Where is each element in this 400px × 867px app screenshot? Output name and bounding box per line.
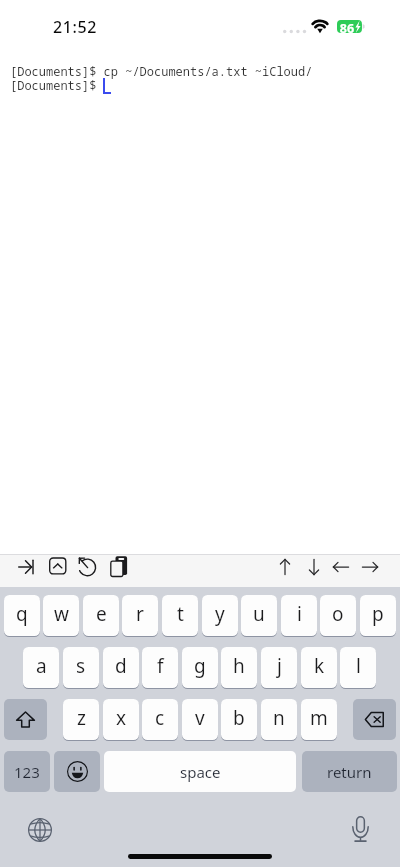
button[interactable]: g: [182, 647, 218, 688]
button[interactable]: Up: [273, 555, 297, 579]
staticText: 123: [14, 762, 40, 782]
staticText: i: [297, 601, 302, 627]
staticText: [Documents]$: [10, 77, 97, 93]
staticText: r: [136, 601, 144, 627]
button[interactable]: Right: [358, 555, 382, 579]
button[interactable]: b: [221, 699, 257, 740]
button[interactable]: r: [122, 595, 158, 636]
button[interactable]: return: [302, 751, 397, 792]
staticText: x: [116, 705, 127, 731]
button[interactable]: Backspace: [353, 699, 396, 740]
button[interactable]: e: [83, 595, 119, 636]
staticText: l: [356, 653, 361, 679]
button[interactable]: space: [104, 751, 296, 792]
staticText: f: [157, 653, 164, 679]
staticText: z: [77, 705, 86, 731]
button[interactable]: w: [43, 595, 79, 636]
button[interactable]: i: [281, 595, 317, 636]
staticText: c: [155, 705, 165, 731]
button[interactable]: Control: [46, 555, 70, 579]
staticText: u: [253, 601, 265, 627]
button[interactable]: n: [261, 699, 297, 740]
button[interactable]: Change keyboard: [28, 818, 52, 842]
button[interactable]: t: [162, 595, 198, 636]
button[interactable]: c: [142, 699, 178, 740]
button[interactable]: m: [301, 699, 337, 740]
button[interactable]: d: [103, 647, 139, 688]
button[interactable]: Left: [329, 555, 353, 579]
staticText: m: [310, 705, 328, 731]
staticText: 86: [338, 20, 356, 37]
staticText: p: [372, 601, 384, 627]
staticText: q: [16, 601, 28, 627]
button[interactable]: Shift: [4, 699, 47, 740]
staticText: return: [327, 762, 372, 782]
staticText: s: [76, 653, 86, 679]
staticText: j: [277, 653, 282, 679]
staticText: k: [314, 653, 325, 679]
button[interactable]: f: [142, 647, 178, 688]
staticText: t: [177, 601, 184, 627]
staticText: a: [36, 653, 47, 679]
button[interactable]: q: [4, 595, 40, 636]
staticText: o: [332, 601, 344, 627]
button[interactable]: v: [182, 699, 218, 740]
staticText: g: [194, 653, 206, 679]
button[interactable]: l: [340, 647, 376, 688]
staticText: d: [115, 653, 127, 679]
staticText: space: [180, 762, 221, 782]
button[interactable]: Down: [302, 555, 326, 579]
staticText: n: [273, 705, 285, 731]
button[interactable]: a: [23, 647, 59, 688]
staticText: y: [215, 601, 225, 627]
button[interactable]: Emoji: [54, 751, 100, 792]
button[interactable]: z: [63, 699, 99, 740]
button[interactable]: 123: [4, 751, 50, 792]
button[interactable]: Paste: [105, 555, 129, 579]
staticText: [Documents]$ cp ~/Documents/a.txt ~iClou…: [10, 63, 313, 79]
button[interactable]: j: [261, 647, 297, 688]
button[interactable]: Tab: [16, 555, 40, 579]
button[interactable]: s: [63, 647, 99, 688]
button[interactable]: k: [301, 647, 337, 688]
button[interactable]: u: [241, 595, 277, 636]
button[interactable]: o: [320, 595, 356, 636]
button[interactable]: h: [221, 647, 257, 688]
staticText: 21:52: [53, 16, 97, 38]
button[interactable]: p: [360, 595, 396, 636]
staticText: w: [54, 601, 69, 627]
staticText: e: [96, 601, 107, 627]
staticText: h: [233, 653, 245, 679]
button[interactable]: y: [202, 595, 238, 636]
button[interactable]: x: [103, 699, 139, 740]
button[interactable]: Undo: [75, 555, 99, 579]
staticText: v: [195, 705, 205, 731]
button[interactable]: Dictate: [349, 816, 372, 843]
staticText: b: [233, 705, 245, 731]
